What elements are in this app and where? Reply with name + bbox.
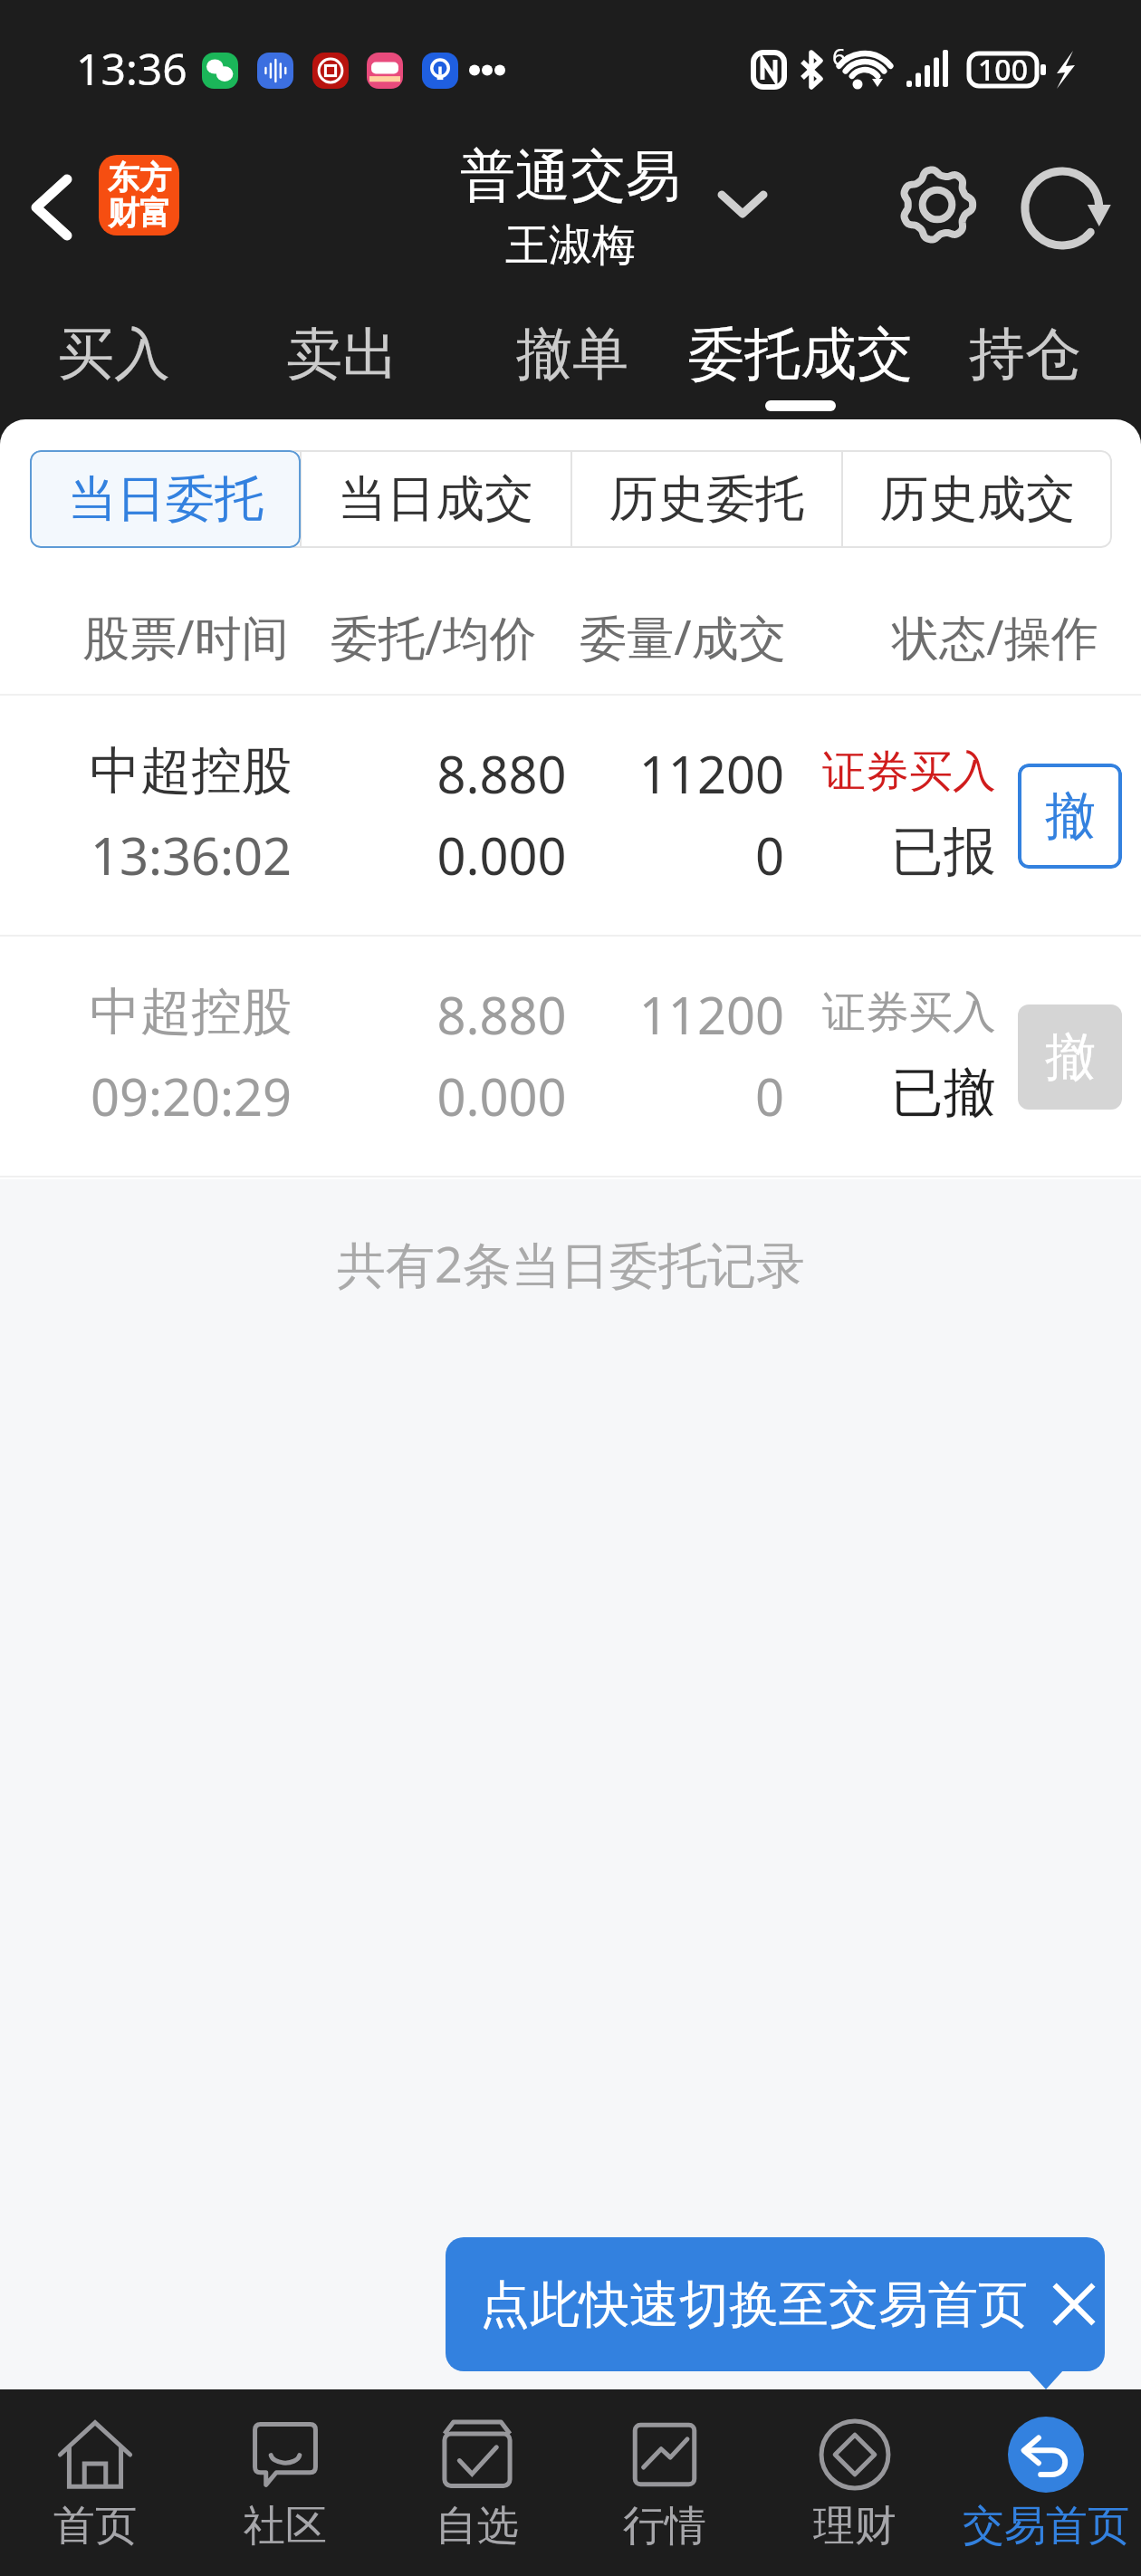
staticText: 当日委托: [67, 468, 263, 530]
staticText: 持仓: [969, 319, 1081, 389]
button[interactable]: 撤: [1018, 1004, 1122, 1110]
button[interactable]: 自选: [382, 2389, 572, 2576]
staticText: 历史成交: [879, 468, 1075, 530]
button[interactable]: 当日成交: [300, 450, 570, 548]
button[interactable]: Settings: [887, 155, 987, 255]
staticText: 已报: [706, 819, 996, 885]
staticText: 0: [494, 821, 784, 889]
staticText: 委托/均价: [298, 604, 570, 668]
staticText: 09:20:29: [46, 1062, 336, 1130]
button[interactable]: 社区: [190, 2389, 380, 2576]
staticText: 理财: [813, 2500, 896, 2552]
staticText: 首页: [53, 2500, 137, 2552]
staticText: 点此快速切换至交易首页: [480, 2273, 1028, 2336]
staticText: 状态/操作: [859, 604, 1131, 668]
staticText: 8.880: [357, 739, 647, 808]
staticText: 中超控股: [46, 739, 336, 803]
staticText: 卖出: [286, 319, 398, 389]
staticText: 证券买入: [706, 745, 996, 799]
staticText: 撤: [1045, 784, 1096, 849]
button[interactable]: 当日委托: [30, 450, 300, 548]
staticText: 普通交易: [344, 141, 797, 211]
staticText: 买入: [58, 319, 170, 389]
button[interactable]: 卖出: [256, 284, 428, 419]
staticText: 社区: [244, 2500, 327, 2552]
button[interactable]: 行情: [570, 2389, 760, 2576]
button[interactable]: Back: [11, 167, 92, 248]
button[interactable]: 历史成交: [841, 450, 1112, 548]
staticText: 共有2条当日委托记录: [337, 1230, 805, 1297]
staticText: 委托成交: [688, 319, 913, 389]
button[interactable]: 首页: [0, 2389, 190, 2576]
button[interactable]: Switch account: [697, 159, 788, 250]
button[interactable]: 历史委托: [570, 450, 841, 548]
staticText: 11200: [494, 739, 784, 808]
staticText: 当日成交: [338, 468, 533, 530]
staticText: 100: [975, 50, 1031, 90]
staticText: 11200: [494, 980, 784, 1049]
button[interactable]: 中超控股: [0, 937, 1141, 1177]
staticText: 中超控股: [46, 980, 336, 1044]
staticText: 王淑梅: [344, 218, 797, 273]
staticText: 0.000: [357, 821, 647, 889]
staticText: 13:36: [76, 39, 187, 98]
staticText: 8.880: [357, 980, 647, 1049]
button[interactable]: 当日委托: [30, 450, 301, 548]
button[interactable]: 点此快速切换至交易首页: [446, 2237, 1105, 2371]
button[interactable]: 撤: [1018, 764, 1122, 869]
button[interactable]: 撤单: [486, 284, 658, 419]
button[interactable]: 交易首页: [951, 2389, 1141, 2576]
staticText: 交易首页: [963, 2500, 1129, 2552]
button[interactable]: 中超控股: [0, 696, 1141, 937]
staticText: 0.000: [357, 1062, 647, 1130]
staticText: 证券买入: [706, 985, 996, 1040]
staticText: 股票/时间: [50, 604, 321, 668]
button[interactable]: 买入: [28, 284, 200, 419]
staticText: 6: [832, 40, 846, 72]
button[interactable]: 理财: [760, 2389, 950, 2576]
staticText: 东方 财富: [108, 158, 171, 234]
button[interactable]: East Money: [99, 155, 179, 235]
staticText: 已撤: [706, 1060, 996, 1126]
staticText: 委量/成交: [547, 604, 819, 668]
staticText: 撤单: [516, 319, 628, 389]
staticText: 0: [494, 1062, 784, 1130]
staticText: 历史委托: [609, 468, 804, 530]
button[interactable]: 委托成交: [674, 284, 927, 419]
staticText: 撤: [1045, 1025, 1096, 1090]
staticText: 13:36:02: [46, 821, 336, 889]
staticText: 行情: [623, 2500, 706, 2552]
staticText: 自选: [436, 2500, 519, 2552]
button[interactable]: 持仓: [939, 284, 1111, 419]
staticText: 当日委托: [68, 468, 264, 530]
button[interactable]: Refresh: [1016, 159, 1116, 258]
